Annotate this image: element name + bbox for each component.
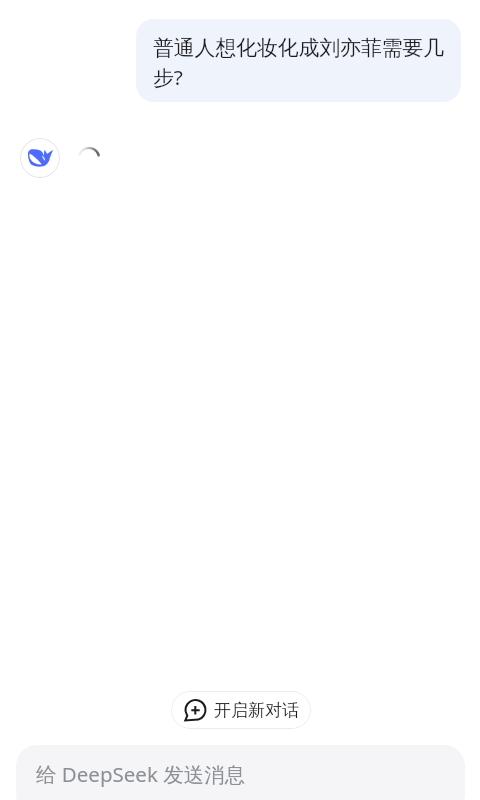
staticText: 普通人想化妆化成刘亦菲需要几步? — [153, 35, 447, 91]
button[interactable]: 给 DeepSeek 发送消息 — [16, 745, 465, 800]
other: Loading — [79, 148, 99, 168]
button[interactable]: 普通人想化妆化成刘亦菲需要几步? — [136, 19, 461, 102]
other: DeepSeek assistant — [20, 138, 60, 178]
staticText: 开启新对话 — [214, 700, 299, 721]
staticText: 给 DeepSeek 发送消息 — [36, 760, 246, 788]
button[interactable]: 开启新对话 — [171, 691, 311, 729]
